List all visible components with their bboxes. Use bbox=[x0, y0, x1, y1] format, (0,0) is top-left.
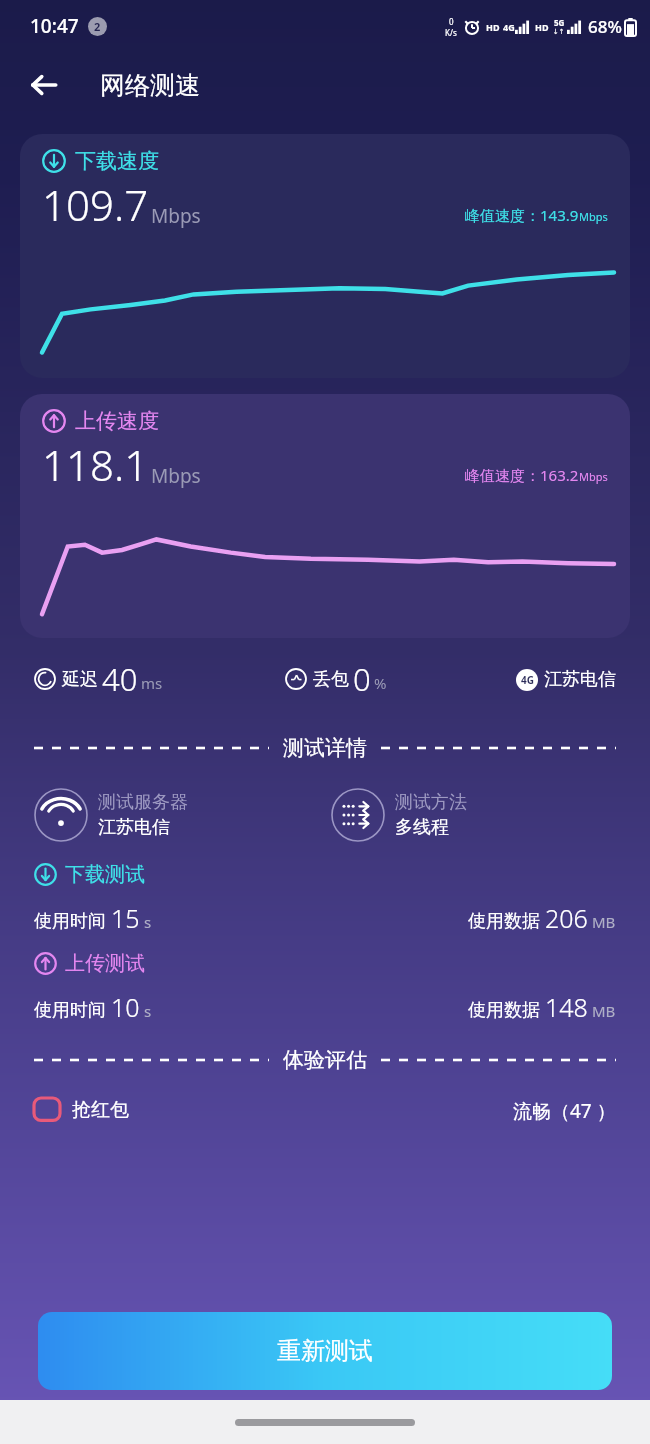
button[interactable]: 下载测试 bbox=[34, 862, 616, 935]
staticText: 使用数据 bbox=[468, 910, 540, 933]
staticText: s bbox=[144, 1001, 152, 1021]
staticText: 10:47 bbox=[30, 13, 79, 39]
staticText: 15 bbox=[111, 901, 140, 935]
staticText: HD bbox=[486, 21, 500, 33]
staticText: ↓↑ bbox=[553, 28, 565, 36]
button[interactable]: 重新测试 bbox=[38, 1312, 612, 1390]
button[interactable]: 下载速度 bbox=[20, 134, 630, 378]
staticText: 测试服务器 bbox=[98, 791, 188, 814]
staticText: 0 bbox=[353, 658, 371, 700]
button[interactable]: 丢包 bbox=[285, 658, 516, 700]
staticText: 使用数据 bbox=[468, 999, 540, 1022]
staticText: 0 bbox=[449, 16, 454, 27]
staticText: 4G bbox=[503, 21, 515, 33]
staticText: 下载测试 bbox=[65, 862, 145, 887]
button[interactable]: 上传测试 bbox=[34, 951, 616, 1024]
button[interactable]: 测试服务器 bbox=[34, 788, 331, 842]
staticText: 10 bbox=[111, 990, 140, 1024]
staticText: 使用时间 bbox=[34, 910, 106, 933]
staticText: HD bbox=[535, 21, 549, 33]
staticText: 江苏电信 bbox=[544, 668, 616, 691]
button[interactable]: 4G bbox=[516, 668, 616, 691]
button[interactable]: Back bbox=[18, 59, 70, 111]
staticText: s bbox=[144, 912, 152, 932]
staticText: 上传速度 bbox=[75, 408, 159, 434]
staticText: K/s bbox=[445, 27, 457, 38]
staticText: 148 bbox=[545, 990, 588, 1024]
staticText: % bbox=[374, 673, 387, 693]
staticText: 体验评估 bbox=[283, 1047, 367, 1073]
staticText: 使用时间 bbox=[34, 999, 106, 1022]
button[interactable]: 测试方法 bbox=[331, 788, 616, 842]
staticText: 118.1 bbox=[42, 436, 149, 493]
button[interactable]: 上传速度 bbox=[20, 394, 630, 638]
staticText: 丢包 bbox=[313, 668, 349, 691]
staticText: MB bbox=[592, 1001, 616, 1021]
staticText: Mbps bbox=[579, 209, 608, 224]
staticText: 测试方法 bbox=[395, 791, 467, 814]
staticText: 峰值速度：163.2 bbox=[465, 465, 579, 485]
staticText: Mbps bbox=[579, 469, 608, 484]
staticText: 2 bbox=[94, 19, 101, 34]
staticText: 多线程 bbox=[395, 816, 449, 839]
staticText: 江苏电信 bbox=[98, 816, 170, 839]
staticText: Mbps bbox=[151, 203, 201, 229]
staticText: 206 bbox=[545, 901, 588, 935]
staticText: Mbps bbox=[151, 463, 201, 489]
staticText: 重新测试 bbox=[277, 1336, 373, 1366]
staticText: ms bbox=[141, 673, 163, 693]
staticText: 测试详情 bbox=[283, 735, 367, 761]
staticText: 下载速度 bbox=[75, 148, 159, 174]
staticText: 5G bbox=[554, 17, 565, 28]
staticText: 网络测速 bbox=[100, 70, 200, 101]
staticText: 峰值速度：143.9 bbox=[465, 205, 579, 225]
staticText: 上传测试 bbox=[65, 951, 145, 976]
staticText: 流畅（47 ） bbox=[513, 1098, 616, 1124]
button[interactable]: 延迟 bbox=[34, 658, 285, 700]
button[interactable]: 抢红包 bbox=[34, 1098, 616, 1128]
staticText: 68% bbox=[588, 15, 622, 38]
staticText: 延迟 bbox=[62, 668, 98, 691]
staticText: 4G bbox=[521, 673, 534, 687]
staticText: 40 bbox=[102, 658, 138, 700]
staticText: 109.7 bbox=[42, 176, 149, 233]
staticText: 抢红包 bbox=[72, 1098, 129, 1122]
staticText: MB bbox=[592, 912, 616, 932]
